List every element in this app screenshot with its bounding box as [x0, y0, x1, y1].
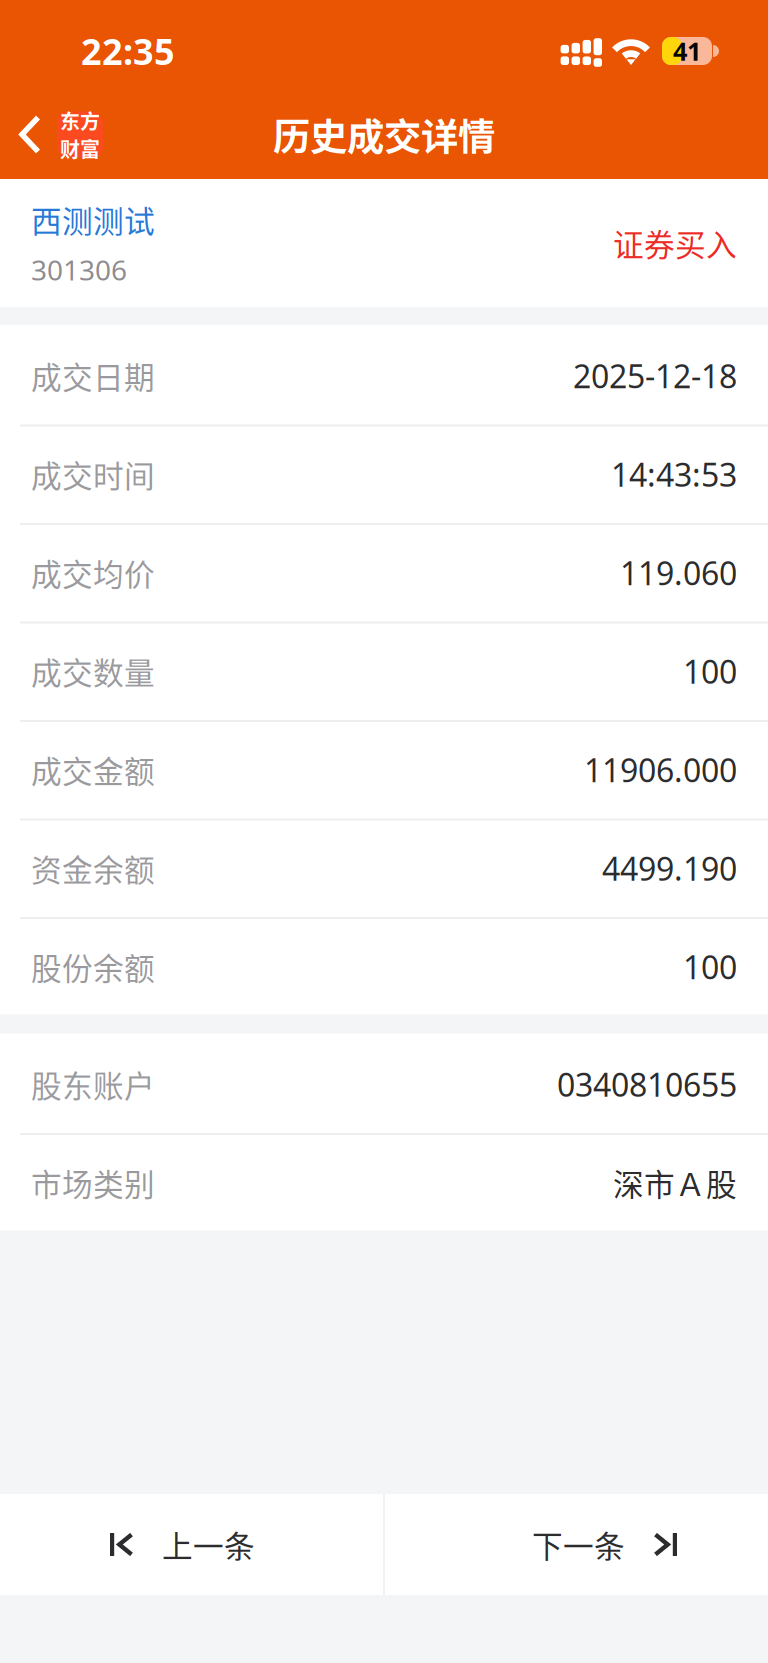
staticText: 财富	[60, 134, 100, 163]
button[interactable]: 上一条	[0, 1494, 383, 1595]
staticText: 下一条	[532, 1522, 625, 1567]
staticText: 东方	[60, 106, 100, 135]
staticText: 119.060	[620, 551, 737, 595]
staticText: 22:35	[81, 26, 175, 75]
staticText: 西测测试	[31, 197, 155, 242]
staticText: 成交数量	[31, 649, 155, 693]
staticText: 股东账户	[31, 1062, 155, 1106]
staticText: 市场类别	[31, 1160, 155, 1205]
staticText: 股份余额	[31, 944, 155, 989]
staticText: 4499.190	[602, 846, 737, 890]
staticText: 成交日期	[31, 353, 155, 398]
staticText: 成交均价	[31, 550, 155, 595]
staticText: 14:43:53	[611, 452, 737, 496]
staticText: 证券买入	[613, 221, 737, 265]
staticText: 历史成交详情	[273, 107, 495, 162]
staticText: 成交金额	[31, 747, 155, 792]
staticText: 资金余额	[31, 846, 155, 890]
staticText: 深市Ａ股	[613, 1160, 737, 1205]
staticText: 11906.000	[584, 748, 737, 792]
staticText: 301306	[31, 251, 127, 289]
staticText: 100	[683, 649, 737, 693]
staticText: 41	[673, 34, 701, 68]
button[interactable]: 下一条	[385, 1494, 768, 1595]
staticText: 2025-12-18	[573, 354, 737, 398]
staticText: 100	[683, 945, 737, 989]
staticText: 成交时间	[31, 452, 155, 496]
staticText: 上一条	[162, 1522, 255, 1567]
button[interactable]: Back	[0, 102, 115, 167]
staticText: 0340810655	[557, 1062, 737, 1106]
